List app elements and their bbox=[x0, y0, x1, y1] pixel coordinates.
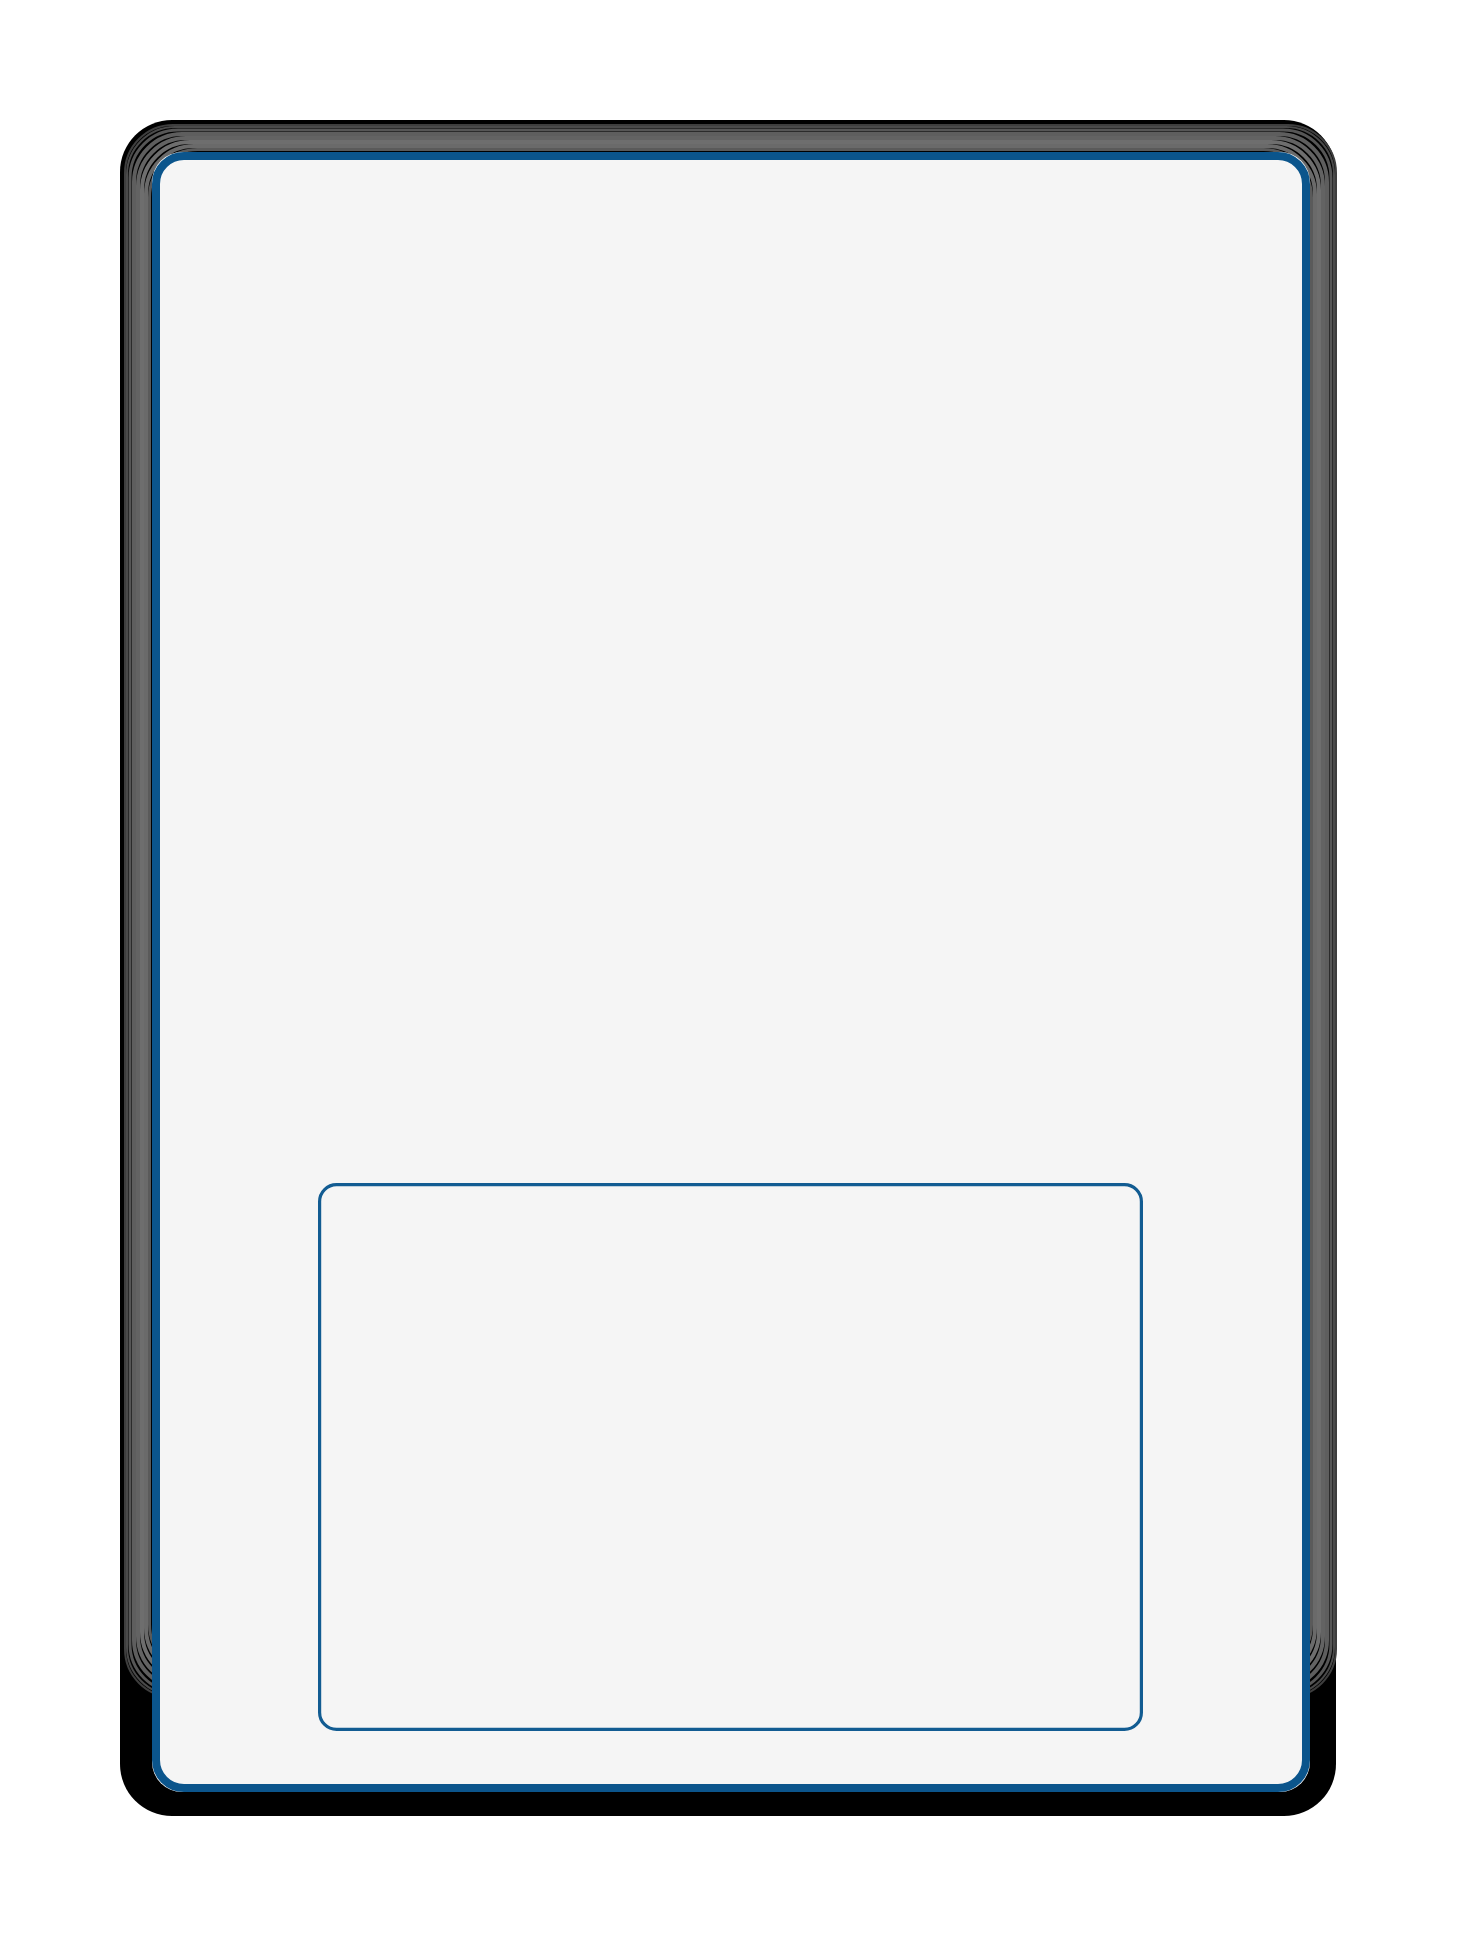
button[interactable]: Device frame preview bbox=[0, 0, 1461, 1941]
